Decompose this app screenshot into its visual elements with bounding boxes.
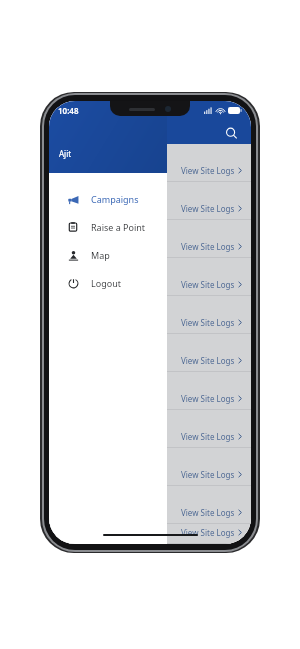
staticText: View Site Logs — [181, 393, 235, 404]
staticText: 10:48 — [58, 105, 79, 116]
staticText: Logout — [91, 277, 121, 289]
staticText: View Site Logs — [181, 527, 235, 538]
button[interactable]: View Site Logs — [49, 258, 251, 296]
button[interactable]: View Site Logs — [49, 144, 251, 182]
staticText: Raise a Point — [91, 221, 146, 233]
staticText: 10:48 — [58, 105, 79, 116]
staticText: View Site Logs — [181, 165, 235, 176]
staticText: View Site Logs — [181, 507, 235, 518]
staticText: View Site Logs — [181, 203, 235, 214]
staticText: View Site Logs — [181, 241, 235, 252]
button[interactable]: View Site Logs — [49, 486, 251, 524]
button[interactable]: View Site Logs — [49, 182, 251, 220]
staticText: Campaigns — [91, 193, 139, 205]
button[interactable]: View Site Logs — [49, 220, 251, 258]
staticText: Map — [91, 249, 110, 261]
staticText: View Site Logs — [181, 279, 235, 290]
button[interactable]: View Site Logs — [49, 334, 251, 372]
button[interactable]: Logout — [49, 269, 167, 297]
button[interactable]: View Site Logs — [49, 410, 251, 448]
staticText: Ajit — [59, 148, 72, 159]
button[interactable]: Map — [49, 241, 167, 269]
button[interactable]: View Site Logs — [49, 448, 251, 486]
staticText: View Site Logs — [181, 317, 235, 328]
staticText: View Site Logs — [181, 469, 235, 480]
staticText: View Site Logs — [181, 355, 235, 366]
staticText: View Site Logs — [181, 431, 235, 442]
button[interactable]: Search — [221, 123, 241, 143]
button[interactable]: Campaigns — [49, 185, 167, 213]
button[interactable]: View Site Logs — [49, 524, 251, 544]
button[interactable]: View Site Logs — [49, 296, 251, 334]
button[interactable]: View Site Logs — [49, 372, 251, 410]
button[interactable]: Raise a Point — [49, 213, 167, 241]
staticText: Campaigns — [59, 126, 221, 141]
